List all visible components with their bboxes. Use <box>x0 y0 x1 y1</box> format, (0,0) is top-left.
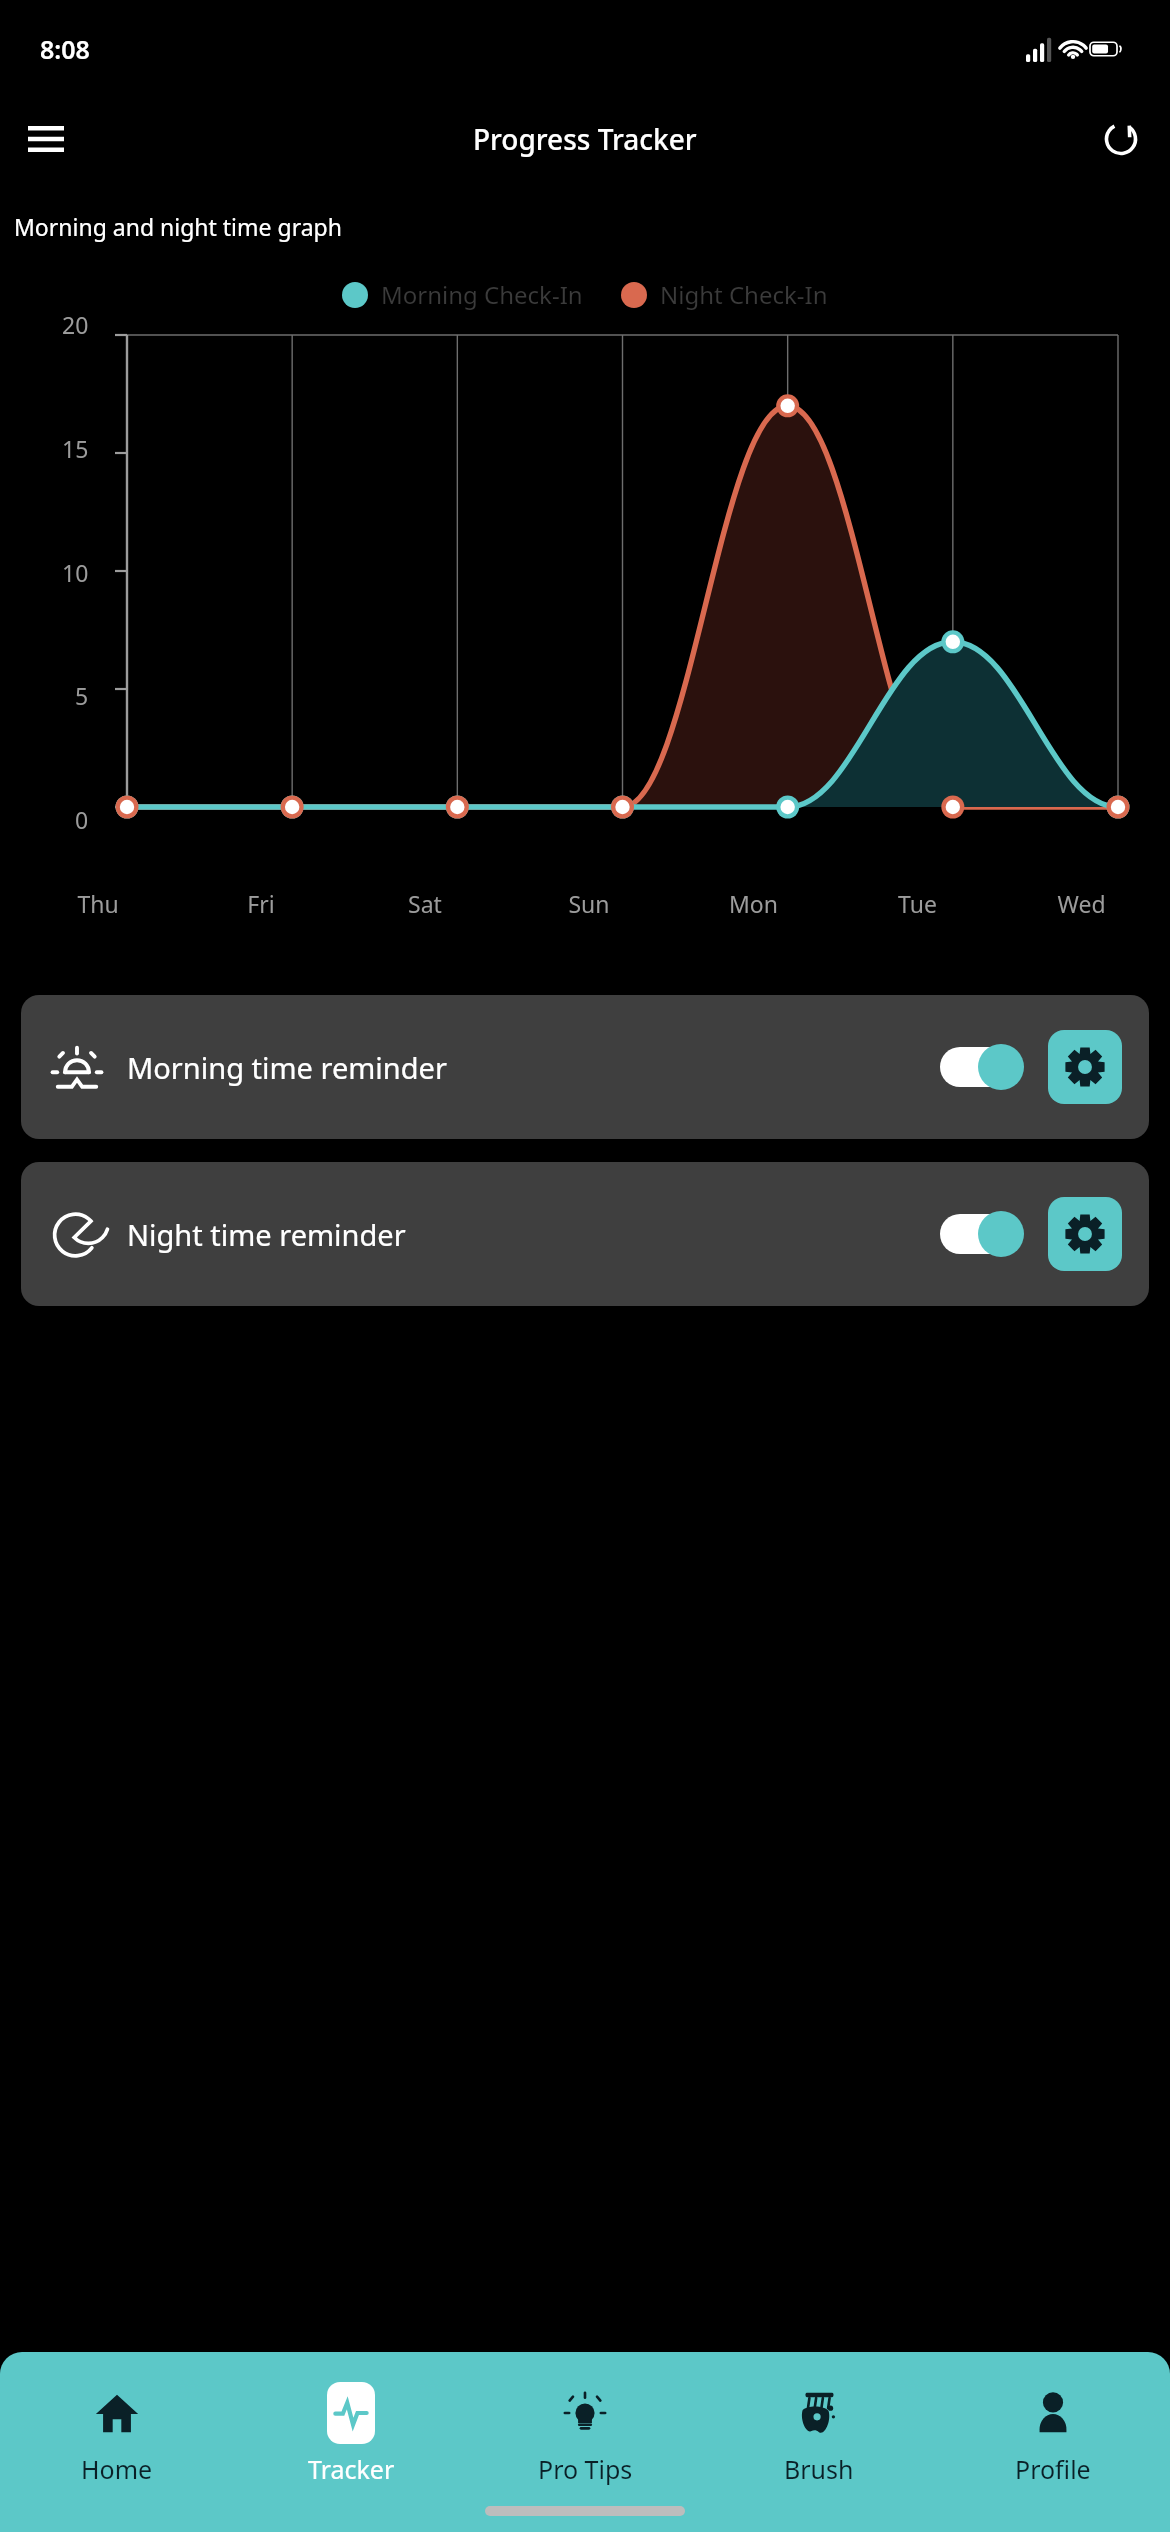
staticText: Mon <box>729 888 778 919</box>
staticText: Fri <box>247 888 275 919</box>
staticText: Tracker <box>308 2452 395 2486</box>
button[interactable]: Refresh <box>1090 108 1152 170</box>
button[interactable]: Settings for Morning time reminder <box>1048 1030 1122 1104</box>
button[interactable]: Tracker <box>234 2378 468 2490</box>
staticText: 15 <box>62 433 89 464</box>
staticText: Morning time reminder <box>127 1048 447 1087</box>
staticText: Sat <box>408 888 442 919</box>
button[interactable]: Pro Tips <box>468 2378 702 2490</box>
button[interactable]: Morning time reminder <box>21 995 1149 1139</box>
button[interactable]: Home <box>0 2378 234 2490</box>
button[interactable]: Night time reminder <box>21 1162 1149 1306</box>
staticText: Night time reminder <box>127 1215 406 1254</box>
staticText: Thu <box>77 888 119 919</box>
staticText: Sun <box>568 888 610 919</box>
staticText: Home <box>81 2452 153 2486</box>
button[interactable]: Toggle Night time reminder <box>940 1211 1024 1257</box>
button[interactable]: Toggle Morning time reminder <box>940 1044 1024 1090</box>
staticText: Night Check-In <box>660 278 828 311</box>
staticText: 8:08 <box>40 32 90 66</box>
staticText: Morning and night time graph <box>14 211 342 242</box>
staticText: Brush <box>784 2452 854 2486</box>
button[interactable]: Settings for Night time reminder <box>1048 1197 1122 1271</box>
button[interactable]: Brush <box>702 2378 936 2490</box>
staticText: 20 <box>62 309 89 340</box>
staticText: Tue <box>898 888 937 919</box>
staticText: Pro Tips <box>538 2452 633 2486</box>
staticText: Wed <box>1057 888 1106 919</box>
staticText: 5 <box>75 680 89 711</box>
staticText: 10 <box>62 557 89 588</box>
staticText: Morning Check-In <box>381 278 583 311</box>
button[interactable]: Menu <box>14 107 78 171</box>
staticText: Profile <box>1015 2452 1091 2486</box>
staticText: Progress Tracker <box>473 120 697 158</box>
button[interactable]: Profile <box>936 2378 1170 2490</box>
staticText: 0 <box>75 804 89 835</box>
